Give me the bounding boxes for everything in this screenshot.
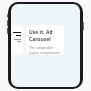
staticText: Carousel: [29, 36, 51, 43]
button[interactable]: Previous card: [11, 25, 23, 55]
staticText: pager component.: [29, 50, 61, 55]
button[interactable]: Use it, Ad: [26, 25, 64, 55]
staticText: Use it, Ad: [29, 29, 53, 36]
staticText: The swipeable card: [29, 45, 61, 50]
